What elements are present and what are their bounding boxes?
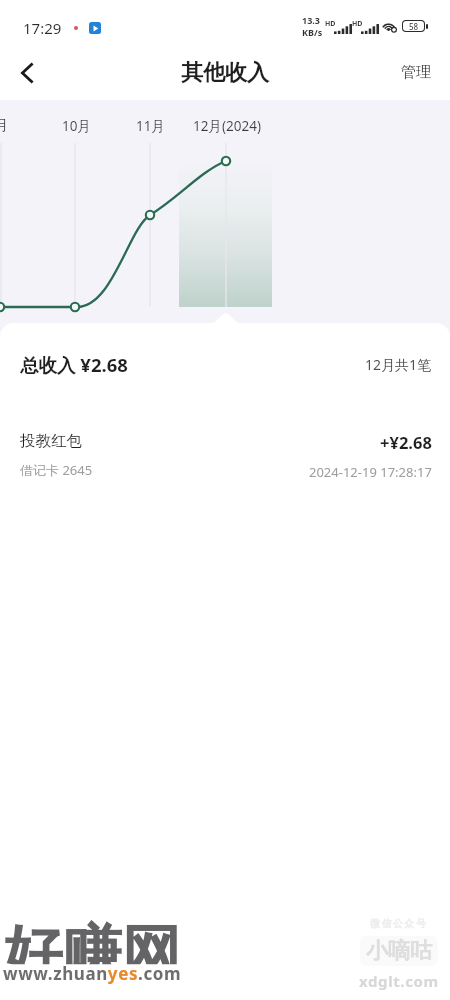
staticText: 17:29 <box>23 18 62 38</box>
staticText: xdglt.com <box>359 971 439 991</box>
button[interactable]: 投教红包 <box>0 431 450 481</box>
staticText: 12月共1笔 <box>365 355 432 374</box>
staticText: 其他收入 <box>181 59 269 87</box>
staticText: 10月 <box>62 117 91 135</box>
staticText: 微信公众号 <box>370 917 428 930</box>
staticText: 小嘀咕 <box>366 937 432 965</box>
staticText: HD <box>352 19 363 29</box>
staticText: www.zhuanyes.com <box>3 962 182 985</box>
staticText: 管理 <box>401 63 431 82</box>
staticText: 11月 <box>136 117 165 135</box>
staticText: 月 <box>0 117 9 134</box>
staticText: 58 <box>409 21 419 31</box>
staticText: +¥2.68 <box>380 431 432 453</box>
staticText: 2024-12-19 17:28:17 <box>309 463 432 481</box>
staticText: 好赚网 <box>3 915 180 964</box>
staticText: 12月(2024) <box>193 117 261 135</box>
staticText: HD <box>325 19 336 29</box>
staticText: 借记卡 2645 <box>20 461 93 479</box>
button[interactable]: 管理 <box>395 57 437 88</box>
staticText: 总收入 ¥2.68 <box>20 352 128 377</box>
staticText: KB/s <box>302 26 323 38</box>
staticText: 13.3 <box>302 14 320 26</box>
staticText: 投教红包 <box>20 431 82 451</box>
button[interactable]: Back <box>5 51 49 95</box>
